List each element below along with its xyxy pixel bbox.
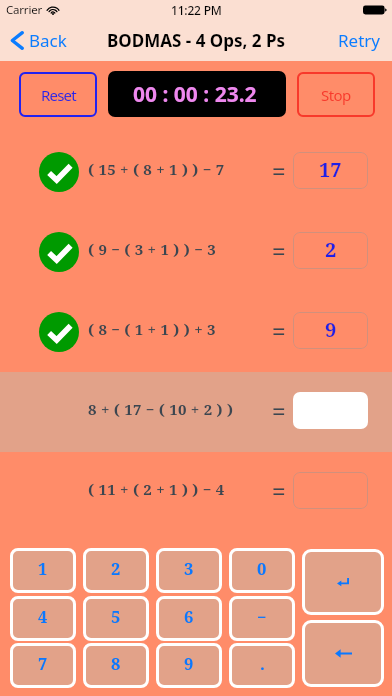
staticText: − — [257, 605, 267, 627]
button[interactable]: 9 — [158, 645, 220, 686]
button[interactable]: 3 — [158, 550, 220, 591]
button[interactable]: Stop — [297, 72, 375, 117]
button[interactable]: 17 — [293, 152, 368, 189]
button[interactable]: ( 9 − ( 3 + 1 ) ) − 3 — [0, 212, 392, 292]
staticText: Reset — [41, 85, 76, 105]
button[interactable]: Back — [0, 29, 75, 52]
button[interactable]: 4 — [12, 598, 74, 639]
staticText: = — [272, 314, 286, 347]
button[interactable]: 5 — [85, 598, 147, 639]
button[interactable]: 2 — [85, 550, 147, 591]
staticText: = — [272, 474, 286, 507]
staticText: = — [272, 394, 286, 427]
staticText: 0 — [257, 557, 267, 579]
button[interactable]: 0 — [231, 550, 293, 591]
button[interactable]: Retry — [338, 29, 392, 52]
staticText: ( 15 + ( 8 + 1 ) ) − 7 — [88, 159, 225, 179]
button[interactable]: 8 — [85, 645, 147, 686]
staticText: 5 — [111, 605, 121, 627]
button[interactable] — [293, 472, 368, 509]
staticText: Stop — [321, 85, 351, 105]
staticText: 1 — [38, 557, 48, 579]
staticText: 8 — [111, 652, 121, 674]
staticText: 17 — [319, 156, 342, 183]
button[interactable]: Enter — [304, 551, 382, 613]
staticText: = — [272, 234, 286, 267]
staticText: Carrier — [6, 2, 43, 18]
staticText: 11:22 PM — [171, 2, 222, 18]
staticText: Back — [29, 29, 67, 52]
staticText: 9 — [184, 652, 194, 674]
staticText: 2 — [325, 236, 337, 263]
button[interactable]: Backspace — [304, 622, 382, 685]
staticText: Retry — [338, 29, 380, 52]
button[interactable]: − — [231, 598, 293, 639]
button[interactable]: ( 15 + ( 8 + 1 ) ) − 7 — [0, 132, 392, 212]
button[interactable]: 6 — [158, 598, 220, 639]
staticText: BODMAS - 4 Ops, 2 Ps — [107, 29, 286, 52]
button[interactable] — [293, 392, 368, 429]
button[interactable]: 1 — [12, 550, 74, 591]
staticText: ( 11 + ( 2 + 1 ) ) − 4 — [88, 479, 225, 499]
button[interactable]: 7 — [12, 645, 74, 686]
button[interactable]: . — [231, 645, 293, 686]
button[interactable]: ( 11 + ( 2 + 1 ) ) − 4 — [0, 452, 392, 532]
staticText: 4 — [38, 605, 48, 627]
staticText: 7 — [38, 652, 48, 674]
staticText: ( 9 − ( 3 + 1 ) ) − 3 — [88, 239, 216, 259]
button[interactable]: Reset — [19, 72, 97, 117]
staticText: 8 + ( 17 − ( 10 + 2 ) ) — [88, 399, 234, 419]
staticText: 2 — [111, 557, 121, 579]
staticText: 6 — [184, 605, 194, 627]
staticText: 00 : 00 : 23.2 — [133, 80, 257, 109]
button[interactable]: 9 — [293, 312, 368, 349]
staticText: 9 — [325, 316, 337, 343]
staticText: ( 8 − ( 1 + 1 ) ) + 3 — [88, 319, 216, 339]
staticText: 3 — [184, 557, 194, 579]
button[interactable]: ( 8 − ( 1 + 1 ) ) + 3 — [0, 292, 392, 372]
staticText: . — [260, 652, 265, 674]
button[interactable]: 8 + ( 17 − ( 10 + 2 ) ) — [0, 372, 392, 452]
button[interactable]: 2 — [293, 232, 368, 269]
staticText: = — [272, 154, 286, 187]
